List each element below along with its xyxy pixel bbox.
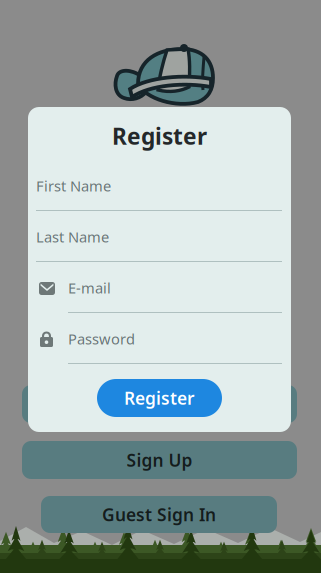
button[interactable]: Register xyxy=(97,379,222,417)
staticText: Password xyxy=(68,329,135,348)
staticText: First Name xyxy=(36,176,111,195)
staticText: E-mail xyxy=(68,278,111,297)
staticText: Guest Sign In xyxy=(102,503,216,526)
button[interactable]: Guest Sign In xyxy=(41,496,277,533)
staticText: Sign Up xyxy=(126,448,192,471)
staticText: Register xyxy=(124,386,195,409)
staticText: Register xyxy=(112,121,207,151)
staticText: Last Name xyxy=(36,227,109,246)
button[interactable]: Sign Up xyxy=(22,441,297,479)
